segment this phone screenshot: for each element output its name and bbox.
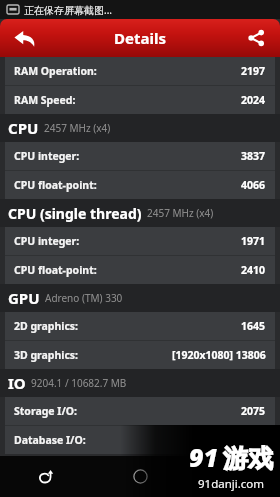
staticText: Details: [114, 28, 166, 48]
button[interactable]: Back: [0, 19, 48, 57]
staticText: 2197: [241, 64, 266, 78]
button[interactable]: 2D graphics:: [5, 312, 275, 340]
staticText: 91danji.com: [198, 476, 265, 492]
staticText: 2410: [241, 263, 266, 277]
button[interactable]: RAM Operation:: [5, 57, 275, 85]
button[interactable]: Back: [0, 456, 94, 497]
button[interactable]: 3D graphics:: [5, 341, 275, 369]
staticText: 2457 MHz (x4): [44, 121, 111, 135]
staticText: CPU float-point:: [14, 263, 97, 277]
staticText: CPU (single thread): [8, 204, 142, 223]
button[interactable]: Storage I/O:: [5, 397, 275, 425]
staticText: 2024: [241, 93, 266, 107]
staticText: 1971: [241, 234, 266, 248]
staticText: 正在保存屏幕截图...: [24, 3, 113, 17]
staticText: 9204.1 / 10682.7 MB: [31, 376, 127, 390]
staticText: 游戏: [223, 443, 273, 474]
staticText: 600: [247, 433, 266, 447]
button[interactable]: Home: [94, 456, 187, 497]
button[interactable]: Share: [232, 19, 280, 57]
staticText: 1645: [241, 319, 266, 333]
staticText: CPU integer:: [14, 149, 80, 163]
staticText: CPU: [8, 118, 39, 138]
staticText: RAM Operation:: [14, 64, 97, 78]
staticText: Database I/O:: [14, 433, 86, 447]
staticText: [1920x1080] 13806: [172, 348, 266, 362]
staticText: 91: [189, 440, 219, 474]
staticText: 3837: [241, 149, 266, 163]
button[interactable]: CPU float-point:: [5, 171, 275, 199]
staticText: Adreno (TM) 330: [45, 291, 123, 305]
staticText: IO: [8, 373, 26, 393]
button[interactable]: Recent apps: [187, 456, 280, 497]
button[interactable]: RAM Speed:: [5, 86, 275, 114]
button[interactable]: CPU float-point:: [5, 256, 275, 284]
staticText: RAM Speed:: [14, 93, 76, 107]
staticText: 3D graphics:: [14, 348, 79, 362]
staticText: CPU float-point:: [14, 178, 97, 192]
button[interactable]: CPU integer:: [5, 142, 275, 170]
staticText: 2D graphics:: [14, 319, 79, 333]
staticText: 4066: [241, 178, 266, 192]
staticText: 2075: [241, 404, 266, 418]
staticText: GPU: [8, 288, 40, 308]
staticText: 2457 MHz (x4): [147, 206, 214, 220]
staticText: CPU integer:: [14, 234, 80, 248]
button[interactable]: CPU integer:: [5, 227, 275, 255]
staticText: Storage I/O:: [14, 404, 78, 418]
button[interactable]: Database I/O:: [5, 426, 275, 454]
